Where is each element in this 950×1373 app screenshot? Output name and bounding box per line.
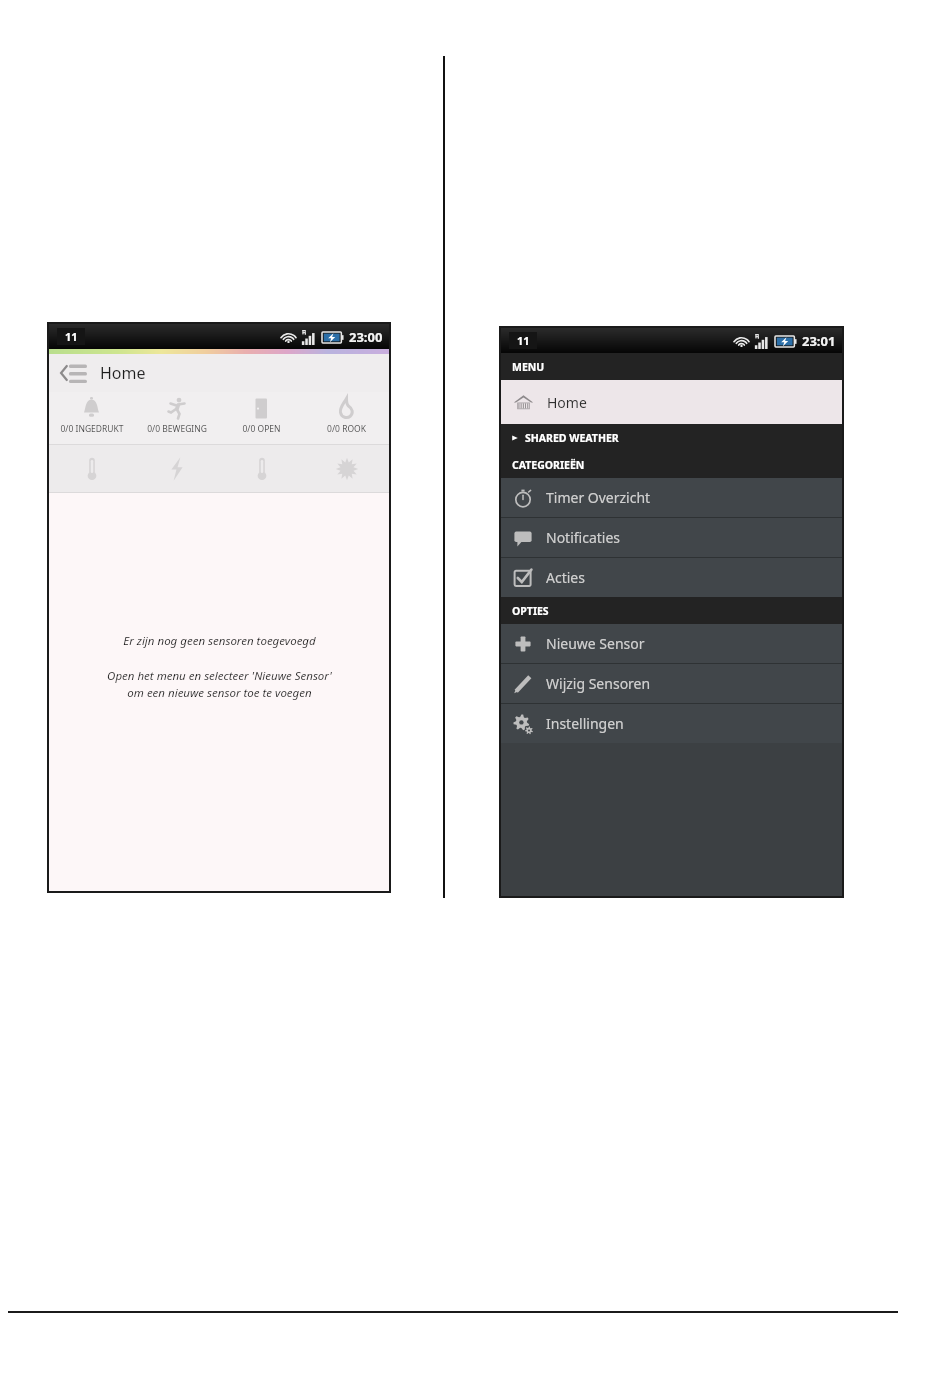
button[interactable]: Open menu (49, 354, 389, 392)
staticText: 0/0 OPEN (242, 423, 281, 435)
staticText: 23:00 (349, 328, 383, 346)
button[interactable]: 0/0 BEWEGING (134, 392, 219, 444)
button[interactable]: Temperature (219, 445, 304, 492)
staticText: CATEGORIEËN (512, 458, 585, 472)
staticText: Instellingen (546, 714, 624, 733)
staticText: Home (100, 362, 146, 384)
staticText: MENU (512, 360, 545, 374)
button[interactable]: Light (304, 445, 389, 492)
staticText: Nieuwe Sensor (546, 634, 645, 653)
button[interactable]: SHARED WEATHER (501, 424, 842, 451)
button[interactable]: Timer Overzicht (501, 478, 842, 517)
button[interactable]: Instellingen (501, 704, 842, 743)
staticText: 0/0 INGEDRUKT (60, 423, 124, 435)
button[interactable]: Acties (501, 558, 842, 597)
staticText: SHARED WEATHER (525, 431, 619, 445)
staticText: Timer Overzicht (546, 488, 651, 507)
button[interactable]: 0/0 ROOK (304, 392, 389, 444)
button[interactable]: 0/0 INGEDRUKT (49, 392, 134, 444)
button[interactable]: 0/0 OPEN (219, 392, 304, 444)
staticText: 23:01 (802, 332, 836, 350)
staticText: Wijzig Sensoren (546, 674, 651, 693)
staticText: 11 (517, 333, 530, 348)
staticText: Er zijn nog geen sensoren toegevoegd (123, 633, 316, 649)
staticText: OPTIES (512, 604, 549, 618)
staticText: Open het menu en selecteer 'Nieuwe Senso… (107, 668, 332, 700)
button[interactable]: Open menu (56, 358, 92, 388)
button[interactable]: Notificaties (501, 518, 842, 557)
staticText: 0/0 ROOK (327, 423, 366, 435)
button[interactable]: Nieuwe Sensor (501, 624, 842, 663)
button[interactable]: Temperature (49, 445, 134, 492)
staticText: 11 (65, 329, 78, 344)
staticText: Acties (546, 568, 585, 587)
staticText: 0/0 BEWEGING (147, 423, 207, 435)
staticText: Home (547, 393, 587, 412)
staticText: Notificaties (546, 528, 621, 547)
button[interactable]: Wijzig Sensoren (501, 664, 842, 703)
button[interactable]: Home (501, 380, 842, 424)
